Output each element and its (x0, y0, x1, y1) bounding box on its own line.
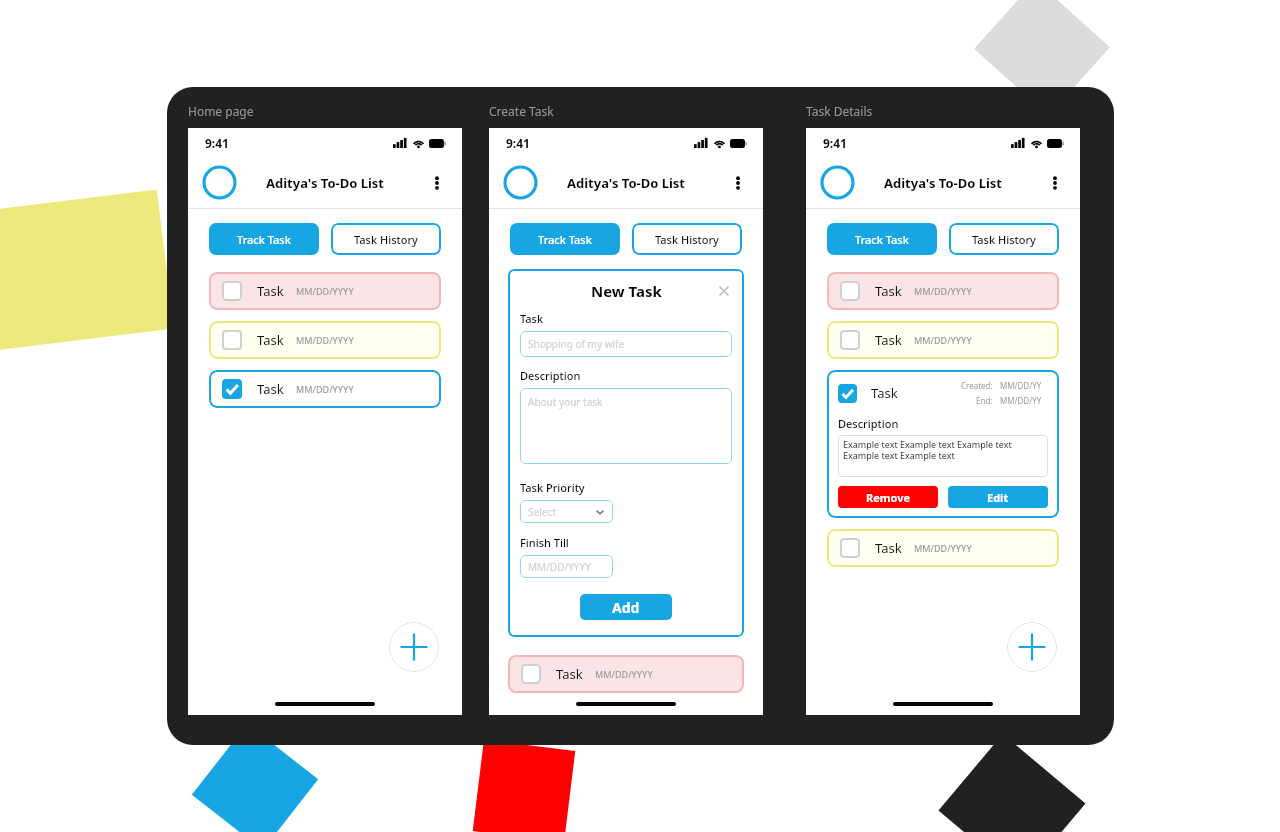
staticText: Task (257, 282, 284, 300)
staticText: Add (612, 598, 640, 617)
button[interactable]: Mark task complete (840, 281, 860, 301)
staticText: Aditya's To-Do List (266, 174, 385, 192)
button[interactable]: Close (716, 283, 732, 299)
staticText: Remove (866, 490, 911, 505)
staticText: Edit (987, 490, 1009, 505)
staticText: 9:41 (506, 135, 530, 151)
staticText: Example text Example text Example text E… (843, 438, 1043, 462)
staticText: End: (976, 395, 993, 406)
staticText: Task (871, 384, 898, 402)
staticText: Task (257, 380, 284, 398)
staticText: Task (875, 331, 902, 349)
button[interactable]: Mark task complete (521, 664, 541, 684)
staticText: Task Details (806, 103, 873, 119)
button[interactable]: Profile (202, 165, 237, 200)
staticText: Home page (188, 103, 254, 119)
button[interactable]: Mark task complete (222, 281, 242, 301)
button[interactable]: Add task (389, 622, 439, 672)
button[interactable]: Task History (331, 223, 441, 255)
staticText: Finish Till (520, 535, 569, 550)
button[interactable]: Mark task complete (827, 321, 1059, 359)
staticText: Shopping of my wife (528, 337, 625, 351)
button[interactable]: Profile (820, 165, 855, 200)
staticText: Description (520, 368, 581, 383)
button[interactable]: Mark task complete (508, 655, 744, 693)
button[interactable]: Task History (632, 223, 742, 255)
staticText: Track Task (538, 232, 592, 247)
button[interactable]: Mark task complete (222, 330, 242, 350)
staticText: Track Task (855, 232, 909, 247)
staticText: MM/DD/YYYY (296, 383, 354, 395)
button[interactable]: Task completed (827, 370, 1059, 518)
button[interactable]: Task completed (209, 370, 441, 408)
button[interactable]: Mark task complete (827, 272, 1059, 310)
button[interactable]: Task completed (838, 384, 857, 403)
staticText: Aditya's To-Do List (567, 174, 686, 192)
button[interactable]: Mark task complete (840, 538, 860, 558)
staticText: MM/DD/YYYY (296, 334, 354, 346)
button[interactable]: Task History (949, 223, 1059, 255)
staticText: New Task (591, 281, 662, 301)
staticText: Create Task (489, 103, 554, 119)
button[interactable]: Remove (838, 486, 938, 508)
staticText: Task (875, 539, 902, 557)
staticText: Task History (655, 232, 719, 247)
button[interactable]: Track Task (510, 223, 620, 255)
button[interactable]: Add task (1007, 622, 1057, 672)
staticText: MM/DD/YY (1000, 395, 1042, 406)
staticText: MM/DD/YYYY (296, 285, 354, 297)
button[interactable]: Shopping of my wife (520, 331, 732, 357)
button[interactable]: Mark task complete (827, 529, 1059, 567)
staticText: 9:41 (823, 135, 847, 151)
button[interactable]: Track Task (209, 223, 319, 255)
staticText: Task History (354, 232, 418, 247)
staticText: Description (838, 416, 899, 431)
staticText: Aditya's To-Do List (884, 174, 1003, 192)
staticText: Task (556, 665, 583, 683)
staticText: Task (520, 311, 544, 326)
staticText: MM/DD/YYYY (528, 560, 591, 574)
button[interactable]: MM/DD/YYYY (520, 555, 613, 578)
button[interactable]: More options (727, 172, 749, 194)
staticText: Created: (961, 380, 993, 391)
button[interactable]: Add (580, 594, 672, 620)
staticText: Task Priority (520, 480, 585, 495)
staticText: Task History (972, 232, 1036, 247)
staticText: Task (257, 331, 284, 349)
staticText: Task (875, 282, 902, 300)
button[interactable]: Mark task complete (209, 321, 441, 359)
button[interactable]: Task completed (222, 379, 242, 399)
button[interactable]: Mark task complete (840, 330, 860, 350)
button[interactable]: Select (520, 500, 613, 523)
staticText: Select (528, 505, 556, 519)
button[interactable]: More options (1044, 172, 1066, 194)
staticText: MM/DD/YY (1000, 380, 1042, 391)
staticText: MM/DD/YYYY (914, 542, 972, 554)
staticText: Track Task (237, 232, 291, 247)
button[interactable]: About your task (520, 388, 732, 464)
button[interactable]: Profile (503, 165, 538, 200)
button[interactable]: Edit (948, 486, 1048, 508)
staticText: MM/DD/YYYY (914, 334, 972, 346)
button[interactable]: Mark task complete (209, 272, 441, 310)
staticText: About your task (528, 395, 603, 409)
staticText: MM/DD/YYYY (595, 668, 653, 680)
staticText: MM/DD/YYYY (914, 285, 972, 297)
staticText: 9:41 (205, 135, 229, 151)
button[interactable]: More options (426, 172, 448, 194)
button[interactable]: Track Task (827, 223, 937, 255)
